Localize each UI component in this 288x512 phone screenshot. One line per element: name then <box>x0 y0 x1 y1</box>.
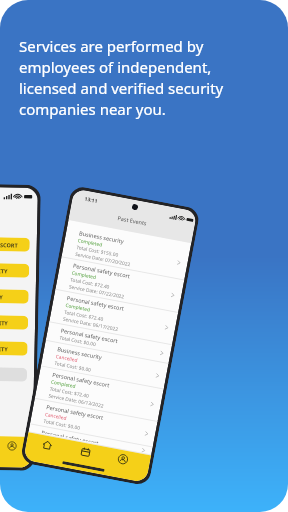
staticText: BUSINESS SECURITY <box>0 266 8 274</box>
button[interactable]: Personal safety escort <box>30 399 157 448</box>
button[interactable]: PROPERTY SECURITY <box>0 314 28 330</box>
staticText: 13:11 <box>84 196 98 205</box>
staticText: Total Cost: $72.40 <box>70 276 110 291</box>
staticText: Personal safety escort <box>41 429 99 443</box>
button[interactable]: Profile <box>7 441 17 451</box>
button[interactable]: PERSONAL SAFETY ESCORT <box>0 236 30 252</box>
staticText: Completed <box>71 269 97 281</box>
staticText: Service Date: 06/13/2022 <box>48 392 104 410</box>
button[interactable]: Personal safety escort <box>46 322 172 364</box>
staticText: Business security <box>56 345 103 362</box>
button[interactable]: EXECUTIVE SECURITY <box>0 340 28 356</box>
staticText: Past Events <box>117 214 148 226</box>
staticText: Services are performed by employees of i… <box>19 36 258 120</box>
staticText: Personal safety escort <box>72 262 131 280</box>
button[interactable]: Personal safety escort <box>55 257 184 313</box>
button[interactable]: BUSINESS SECURITY <box>0 262 29 278</box>
button[interactable]: EVENT SECURITY <box>0 288 29 304</box>
button[interactable]: Personal safety escort <box>49 290 178 345</box>
staticText: PROPERTY SECURITY <box>0 318 8 326</box>
staticText: Service Date: 06/17/2022 <box>62 316 119 333</box>
button[interactable]: Business security <box>61 225 190 280</box>
staticText: Service Date: 07/22/2022 <box>68 283 125 301</box>
staticText: Total Cost: $0.00 <box>59 334 96 348</box>
staticText: Personal safety escort <box>66 294 125 313</box>
staticText: Total Cost: $72.40 <box>49 385 90 400</box>
staticText: Total Cost: $155.00 <box>76 244 119 259</box>
button[interactable]: Home <box>41 439 53 451</box>
staticText: Total Cost: $0.00 <box>43 418 81 432</box>
button[interactable]: Personal safety escort <box>28 424 153 455</box>
button[interactable]: Events <box>80 446 91 458</box>
staticText: Business security <box>78 229 125 246</box>
staticText: Cancelled <box>44 411 67 422</box>
staticText: Cancelled <box>55 353 78 364</box>
staticText: EXECUTIVE SECURITY <box>0 344 9 352</box>
staticText: Service Date: 07/20/2022 <box>74 251 131 268</box>
button[interactable]: Profile <box>117 453 129 465</box>
staticText: Completed <box>50 379 76 390</box>
staticText: PERSONAL SAFETY ESCORT <box>0 240 18 248</box>
staticText: Total Cost: $72.40 <box>64 309 104 323</box>
staticText: EVENT SECURITY <box>0 292 3 300</box>
staticText: Personal safety escort <box>52 371 110 389</box>
staticText: Completed <box>77 237 103 249</box>
staticText: Completed <box>65 302 91 313</box>
staticText: Personal safety escort <box>60 326 119 345</box>
staticText: Personal safety escort <box>46 403 104 422</box>
button[interactable]: CONTACT US <box>0 366 27 382</box>
staticText: Total Cost: $0.00 <box>54 360 92 374</box>
button[interactable]: Business security <box>41 341 168 390</box>
button[interactable]: Personal safety escort <box>35 366 164 422</box>
